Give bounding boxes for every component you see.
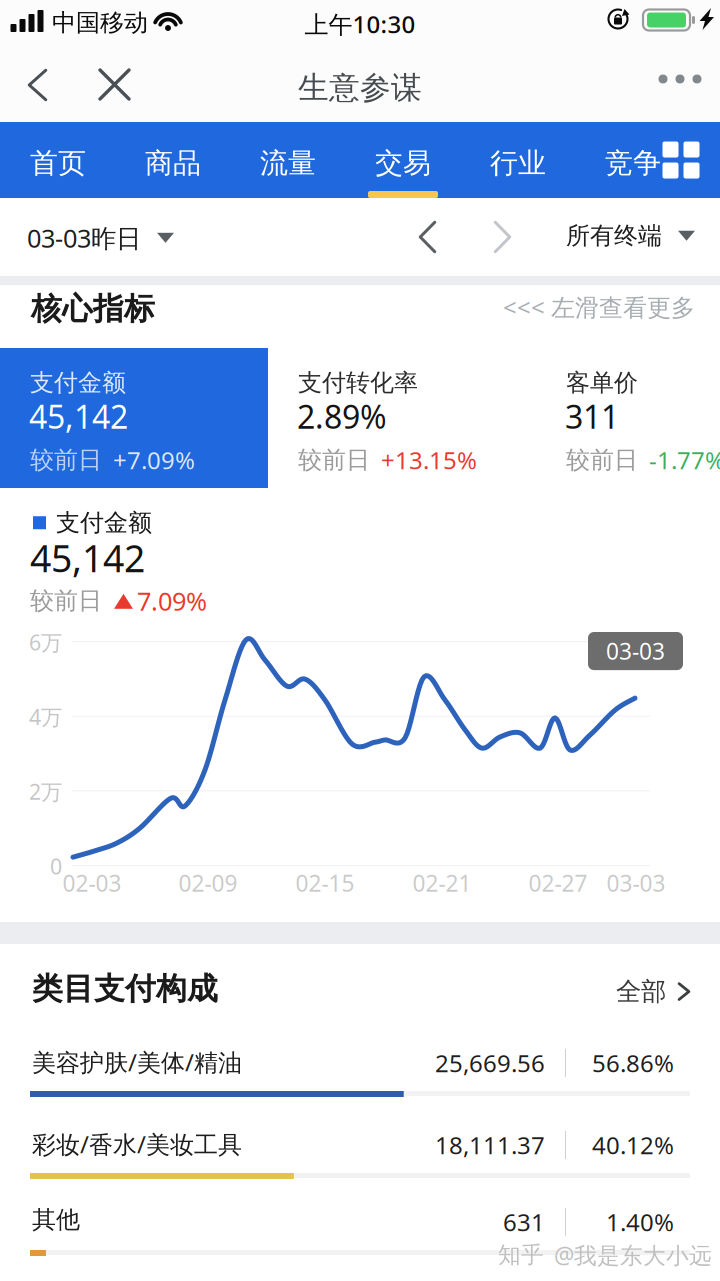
- staticText: 支付金额: [30, 368, 126, 397]
- button[interactable]: 商品: [118, 122, 228, 198]
- staticText: 客单价: [566, 368, 638, 397]
- staticText: 02-27: [528, 868, 587, 898]
- staticText: -1.77%: [649, 444, 720, 476]
- staticText: 02-21: [412, 868, 471, 898]
- staticText: 25,669.56: [435, 1047, 545, 1079]
- button[interactable]: 客单价: [0, 348, 184, 488]
- button[interactable]: 首页: [3, 122, 113, 198]
- staticText: 全部: [616, 976, 666, 1007]
- staticText: 311: [565, 395, 619, 437]
- button[interactable]: Previous day: [396, 198, 459, 276]
- staticText: 03-03: [606, 868, 665, 898]
- staticText: 交易: [375, 146, 431, 180]
- staticText: 支付金额: [56, 508, 152, 537]
- staticText: 02-03: [62, 868, 121, 898]
- staticText: 较前日: [566, 445, 638, 475]
- staticText: 较前日: [30, 586, 102, 616]
- staticText: 行业: [490, 146, 546, 180]
- staticText: 较前日: [30, 445, 102, 475]
- staticText: 7.09%: [137, 584, 207, 618]
- staticText: 美容护肤/美体/精油: [32, 1046, 242, 1078]
- staticText: 上午10:30: [304, 8, 415, 40]
- staticText: 1.40%: [606, 1206, 674, 1238]
- button[interactable]: 美容护肤/美体/精油: [0, 944, 720, 1022]
- button[interactable]: 竞争: [578, 122, 688, 198]
- staticText: +13.15%: [381, 444, 477, 476]
- staticText: 商品: [145, 146, 201, 180]
- button[interactable]: More: [640, 48, 720, 110]
- staticText: 其他: [32, 1205, 80, 1234]
- staticText: 所有终端: [566, 221, 662, 250]
- staticText: 中国移动: [52, 8, 148, 37]
- button[interactable]: 彩妆/香水/美妆工具: [0, 944, 720, 1022]
- staticText: +7.09%: [113, 444, 195, 476]
- staticText: 18,111.37: [435, 1129, 545, 1161]
- button[interactable]: Next day: [471, 198, 534, 276]
- button[interactable]: 其他: [0, 944, 720, 1022]
- button[interactable]: 所有终端: [550, 198, 710, 273]
- staticText: 知乎: [498, 1241, 544, 1269]
- staticText: 0: [50, 852, 62, 880]
- staticText: 2万: [29, 777, 62, 806]
- button[interactable]: 全部: [598, 962, 709, 1021]
- staticText: 03-03: [606, 636, 665, 666]
- staticText: 生意参谋: [298, 69, 422, 107]
- button[interactable]: 03-03昨日: [11, 198, 189, 278]
- staticText: 4万: [29, 703, 62, 731]
- staticText: 流量: [260, 146, 316, 180]
- staticText: 56.86%: [592, 1047, 674, 1079]
- staticText: 02-09: [178, 868, 237, 898]
- button[interactable]: 流量: [233, 122, 343, 198]
- button[interactable]: Back: [11, 48, 64, 122]
- staticText: 首页: [30, 146, 86, 180]
- staticText: 45,142: [29, 395, 128, 437]
- button[interactable]: 交易: [348, 122, 458, 198]
- staticText: 03-03昨日: [27, 221, 141, 255]
- staticText: @我是东大小远: [554, 1240, 712, 1270]
- button[interactable]: Close: [82, 48, 147, 121]
- button[interactable]: 支付转化率: [0, 348, 268, 488]
- button[interactable]: <<< 左滑查看更多: [487, 275, 711, 339]
- staticText: 竞争: [605, 146, 661, 180]
- staticText: 支付转化率: [298, 368, 418, 397]
- button[interactable]: All modules: [643, 122, 719, 198]
- staticText: 02-15: [295, 868, 354, 898]
- staticText: 45,142: [30, 533, 145, 583]
- staticText: 40.12%: [592, 1129, 674, 1161]
- staticText: 彩妆/香水/美妆工具: [32, 1128, 242, 1160]
- staticText: <<< 左滑查看更多: [503, 291, 695, 323]
- staticText: 核心指标: [31, 290, 155, 328]
- staticText: 2.89%: [297, 395, 387, 437]
- staticText: 631: [503, 1206, 545, 1238]
- button[interactable]: 支付金额: [0, 348, 268, 488]
- staticText: 类目支付构成: [32, 970, 218, 1008]
- staticText: 6万: [29, 628, 62, 656]
- staticText: 较前日: [298, 445, 370, 475]
- button[interactable]: 行业: [463, 122, 573, 198]
